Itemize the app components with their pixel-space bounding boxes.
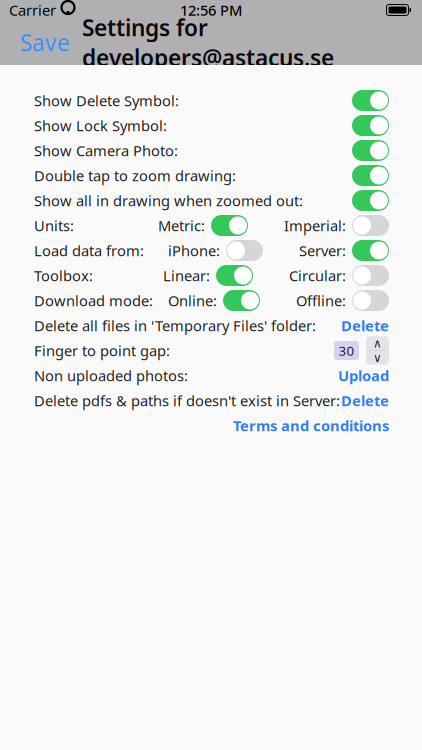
staticText: Upload bbox=[338, 366, 389, 385]
button[interactable]: Metric: bbox=[158, 215, 248, 236]
button[interactable]: Server: bbox=[299, 240, 389, 261]
button[interactable]: Delete bbox=[341, 316, 389, 335]
staticText: Metric: bbox=[158, 216, 205, 235]
staticText: Non uploaded photos: bbox=[34, 366, 188, 385]
button[interactable]: Imperial: bbox=[284, 215, 389, 236]
staticText: 30 bbox=[338, 342, 354, 359]
staticText: Delete pdfs & paths if doesn't exist in … bbox=[34, 391, 340, 410]
staticText: Linear: bbox=[163, 266, 210, 285]
staticText: Double tap to zoom drawing: bbox=[34, 166, 236, 185]
staticText: ∧ bbox=[373, 336, 382, 350]
button[interactable]: Save bbox=[20, 27, 70, 57]
staticText: Online: bbox=[168, 291, 217, 310]
staticText: Finger to point gap: bbox=[34, 341, 170, 360]
button[interactable]: Delete bbox=[341, 391, 389, 410]
staticText: Toolbox: bbox=[34, 266, 93, 285]
button[interactable]: Double tap to zoom drawing: bbox=[352, 165, 389, 186]
button[interactable]: Show Delete Symbol: bbox=[352, 90, 389, 111]
staticText: 12:56 PM bbox=[180, 0, 242, 20]
staticText: iPhone: bbox=[168, 241, 220, 260]
button[interactable]: Show Lock Symbol: bbox=[352, 115, 389, 136]
button[interactable]: Upload bbox=[338, 366, 389, 385]
button[interactable]: Circular: bbox=[289, 265, 389, 286]
staticText: Show Delete Symbol: bbox=[34, 91, 179, 110]
button[interactable]: Linear: bbox=[163, 265, 253, 286]
staticText: Download mode: bbox=[34, 291, 153, 310]
staticText: Show all in drawing when zoomed out: bbox=[34, 191, 303, 210]
staticText: Show Camera Photo: bbox=[34, 141, 178, 160]
staticText: Carrier bbox=[9, 0, 56, 20]
staticText: Units: bbox=[34, 216, 74, 235]
button[interactable]: Show all in drawing when zoomed out: bbox=[352, 190, 389, 211]
button[interactable]: Online: bbox=[168, 290, 260, 311]
staticText: Show Lock Symbol: bbox=[34, 116, 167, 135]
button[interactable]: Offline: bbox=[296, 290, 389, 311]
staticText: Load data from: bbox=[34, 241, 144, 260]
staticText: Server: bbox=[299, 241, 346, 260]
staticText: Offline: bbox=[296, 291, 346, 310]
staticText: Delete all files in 'Temporary Files' fo… bbox=[34, 316, 316, 335]
button[interactable]: Increase bbox=[366, 336, 389, 350]
staticText: Delete bbox=[341, 391, 389, 410]
staticText: Circular: bbox=[289, 266, 346, 285]
button[interactable]: Show Camera Photo: bbox=[352, 140, 389, 161]
staticText: Save bbox=[20, 27, 70, 57]
staticText: Settings for developers@astacus.se bbox=[82, 12, 334, 73]
staticText: ∨ bbox=[373, 351, 382, 364]
staticText: Imperial: bbox=[284, 216, 346, 235]
button[interactable]: Terms and conditions bbox=[233, 416, 389, 435]
staticText: Terms and conditions bbox=[233, 416, 389, 435]
staticText: Delete bbox=[341, 316, 389, 335]
button[interactable]: Decrease bbox=[366, 351, 389, 365]
button[interactable]: iPhone: bbox=[168, 240, 263, 261]
